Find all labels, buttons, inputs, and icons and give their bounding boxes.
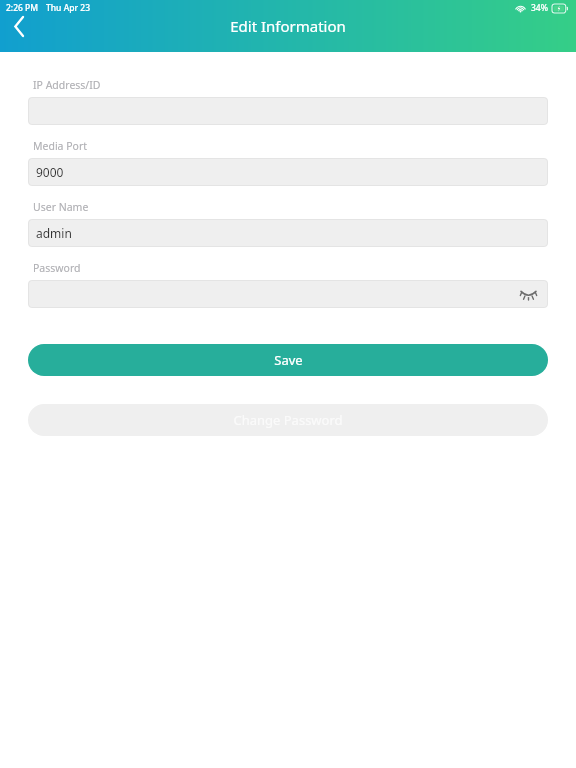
- button[interactable]: 9000: [28, 158, 548, 186]
- staticText: 2:26 PM: [6, 2, 39, 14]
- staticText: Save: [274, 351, 303, 369]
- staticText: Edit Information: [230, 16, 346, 36]
- button[interactable]: admin: [28, 219, 548, 247]
- staticText: 34%: [531, 2, 548, 14]
- staticText: Thu Apr 23: [46, 2, 91, 14]
- button[interactable]: Show password: [516, 282, 540, 306]
- staticText: admin: [36, 225, 72, 241]
- button[interactable]: Show password: [28, 280, 548, 308]
- button[interactable]: Save: [28, 344, 548, 376]
- staticText: Password: [33, 261, 81, 275]
- staticText: Media Port: [33, 139, 88, 153]
- button[interactable]: Back: [0, 16, 38, 36]
- staticText: Change Password: [233, 411, 343, 429]
- staticText: IP Address/ID: [33, 78, 101, 92]
- staticText: User Name: [33, 200, 89, 214]
- staticText: 9000: [36, 164, 64, 180]
